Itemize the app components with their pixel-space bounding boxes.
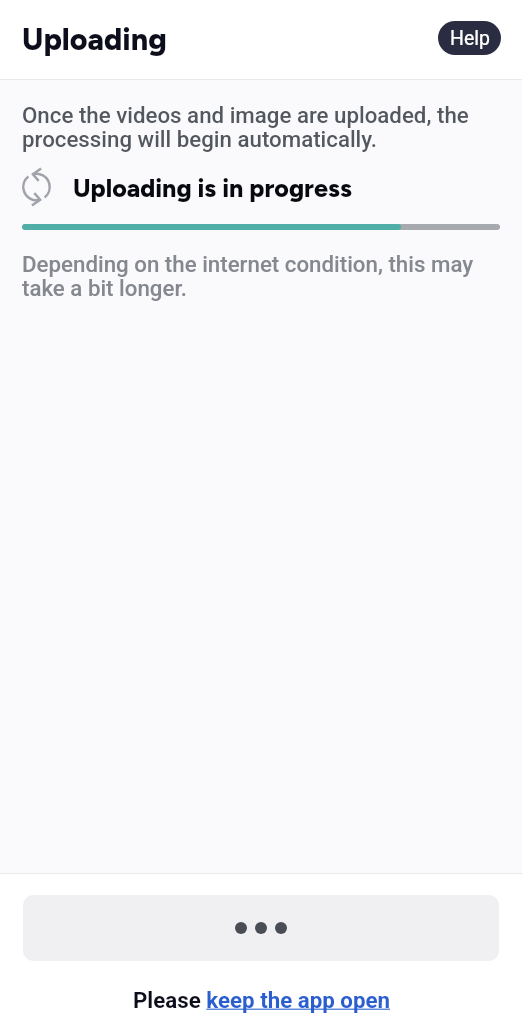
button[interactable]: Uploading, please wait: [23, 895, 499, 961]
staticText: Depending on the internet condition, thi…: [22, 251, 500, 302]
button[interactable]: Help: [438, 21, 501, 55]
staticText: Once the videos and image are uploaded, …: [22, 102, 500, 153]
staticText: Please keep the app open: [133, 987, 390, 1013]
staticText: Uploading: [22, 21, 167, 58]
staticText: Uploading is in progress: [73, 173, 352, 203]
staticText: Help: [450, 27, 490, 50]
